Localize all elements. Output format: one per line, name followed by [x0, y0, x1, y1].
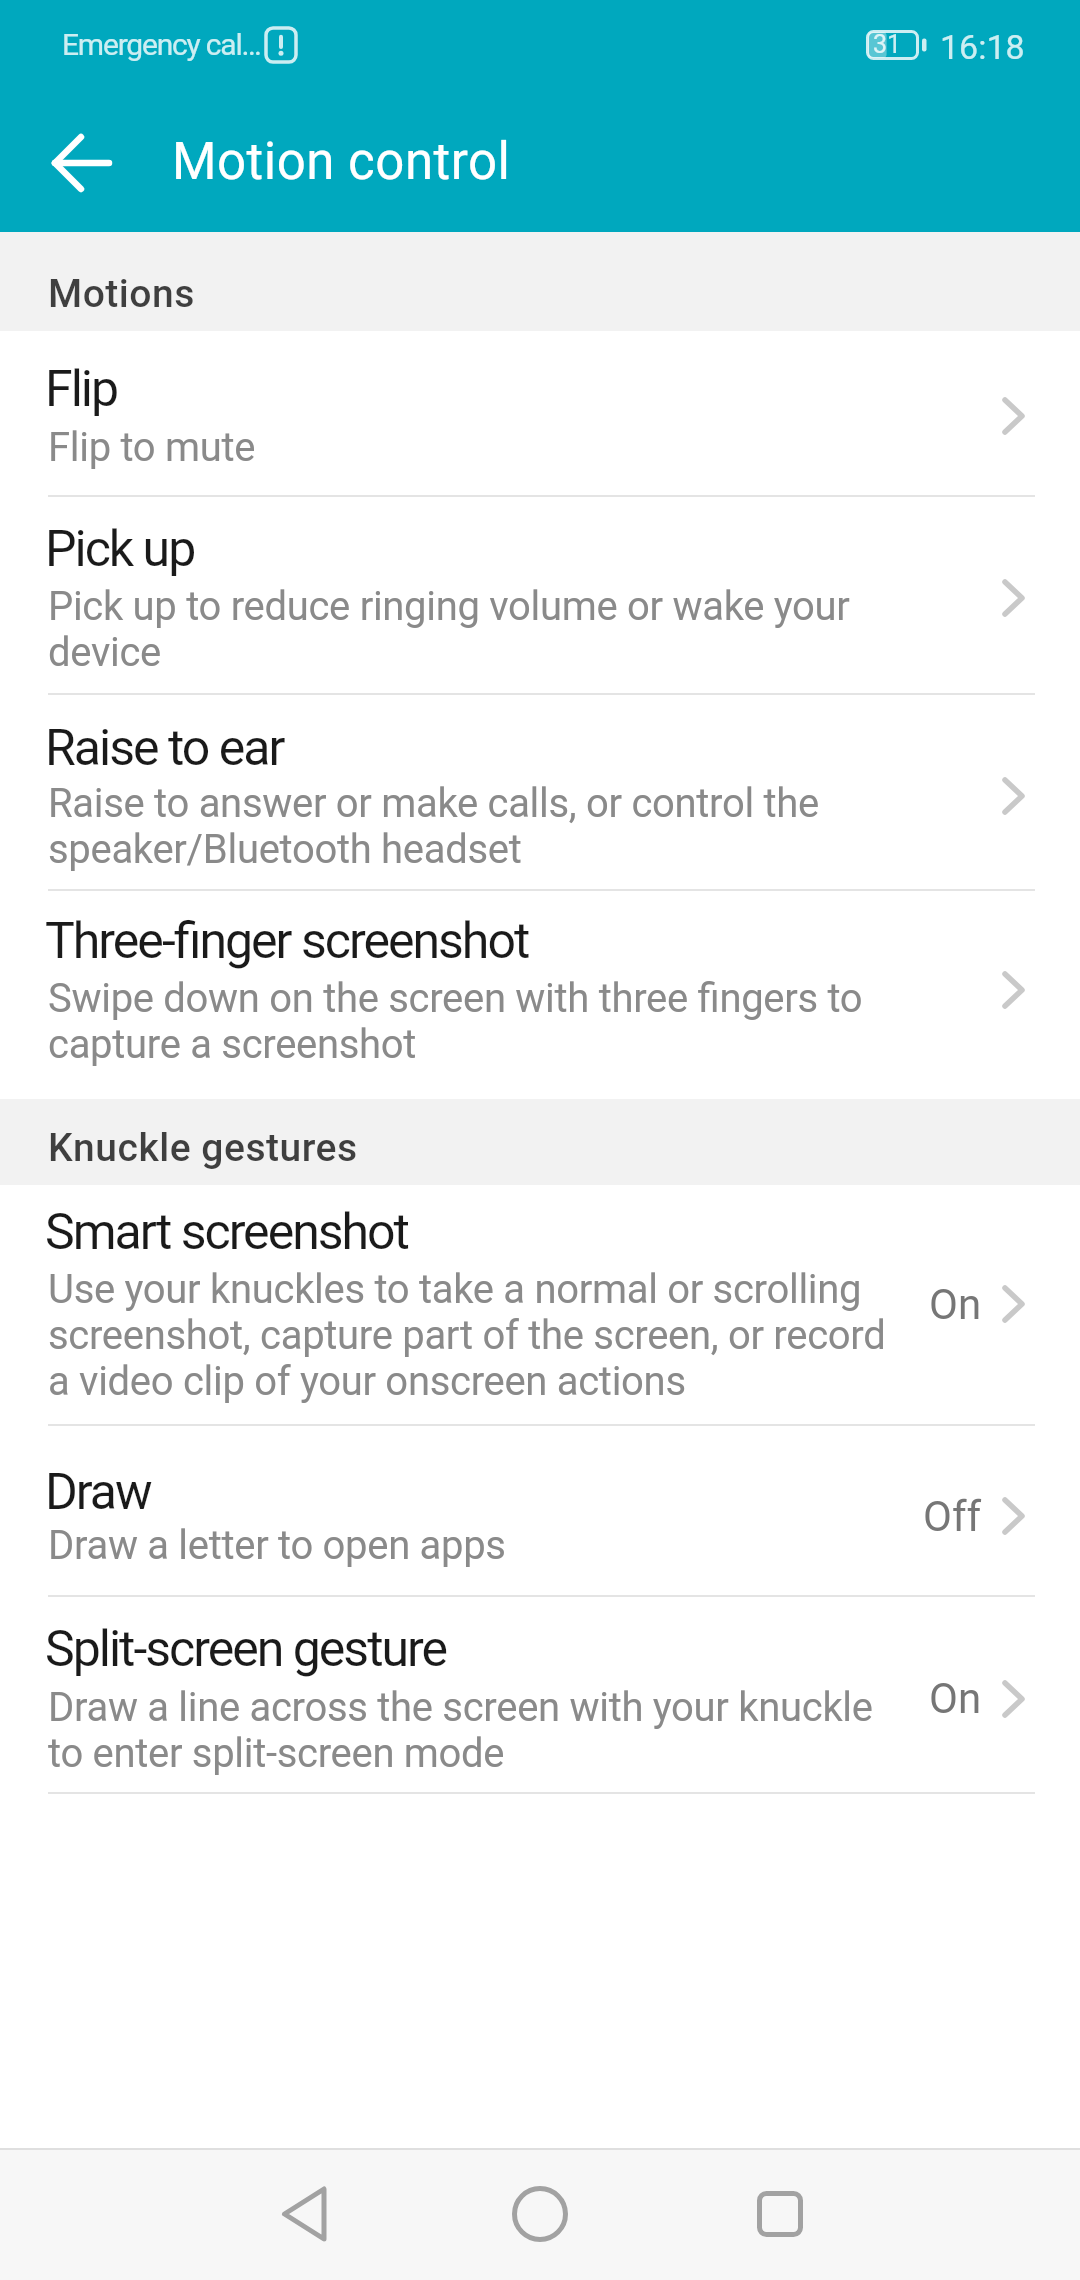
- staticText: Three-finger screenshot: [45, 912, 529, 971]
- staticText: Smart screenshot: [45, 1203, 408, 1262]
- staticText: Draw: [45, 1463, 151, 1522]
- button[interactable]: [40, 121, 124, 205]
- staticText: Knuckle gestures: [48, 1125, 358, 1171]
- staticText: Raise to answer or make calls, or contro…: [48, 780, 819, 873]
- button[interactable]: Smart screenshot: [0, 1185, 1080, 1426]
- button[interactable]: [730, 2164, 830, 2264]
- button[interactable]: Split-screen gesture: [0, 1597, 1080, 1794]
- staticText: Use your knuckles to take a normal or sc…: [48, 1266, 886, 1405]
- button[interactable]: Draw: [0, 1426, 1080, 1597]
- staticText: Pick up: [45, 520, 195, 579]
- button[interactable]: [254, 2164, 354, 2264]
- button[interactable]: Three-finger screenshot: [0, 891, 1080, 1099]
- button[interactable]: Raise to ear: [0, 695, 1080, 891]
- staticText: Raise to ear: [45, 719, 284, 778]
- staticText: On: [929, 1280, 982, 1329]
- staticText: On: [929, 1674, 982, 1723]
- button[interactable]: Flip: [0, 331, 1080, 497]
- staticText: Emergency cal…: [62, 27, 261, 62]
- staticText: Off: [923, 1492, 982, 1541]
- staticText: Flip: [45, 360, 118, 419]
- button[interactable]: [490, 2164, 590, 2264]
- staticText: Pick up to reduce ringing volume or wake…: [48, 583, 850, 676]
- staticText: Motions: [48, 271, 195, 317]
- staticText: Swipe down on the screen with three fing…: [48, 975, 863, 1068]
- staticText: Motion control: [172, 132, 511, 192]
- staticText: 16:18: [940, 27, 1025, 67]
- staticText: Draw a letter to open apps: [48, 1522, 506, 1569]
- staticText: Draw a line across the screen with your …: [48, 1684, 873, 1777]
- staticText: Split-screen gesture: [45, 1620, 447, 1679]
- staticText: 31: [873, 30, 902, 59]
- button[interactable]: Pick up: [0, 497, 1080, 695]
- staticText: Flip to mute: [48, 424, 256, 471]
